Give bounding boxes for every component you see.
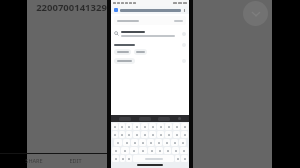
button[interactable]: Emoji xyxy=(126,155,132,162)
button[interactable]: Site info xyxy=(114,8,118,12)
button[interactable] xyxy=(155,139,162,146)
other: Search xyxy=(114,31,119,36)
button[interactable] xyxy=(133,123,140,130)
button[interactable] xyxy=(172,147,179,154)
button[interactable]: SHARE xyxy=(25,157,43,164)
button[interactable] xyxy=(114,49,131,55)
button[interactable] xyxy=(157,123,164,130)
button[interactable] xyxy=(157,131,164,138)
button[interactable]: Insert xyxy=(182,32,186,36)
button[interactable] xyxy=(149,131,156,138)
button[interactable]: More xyxy=(183,9,186,12)
button[interactable] xyxy=(121,147,129,154)
button[interactable] xyxy=(139,147,147,154)
button[interactable]: Symbols xyxy=(112,155,119,162)
button[interactable] xyxy=(130,147,138,154)
button[interactable]: Keyboard settings xyxy=(178,117,181,120)
staticText: SHARE xyxy=(25,157,43,164)
button[interactable]: Slash xyxy=(120,155,125,162)
button[interactable] xyxy=(126,131,132,138)
button[interactable]: Search xyxy=(111,28,189,39)
button[interactable]: Backspace xyxy=(180,147,188,154)
button[interactable] xyxy=(119,131,125,138)
button[interactable] xyxy=(163,139,170,146)
button[interactable] xyxy=(134,49,147,55)
button[interactable] xyxy=(171,139,178,146)
button[interactable] xyxy=(139,139,146,146)
button[interactable] xyxy=(173,123,180,130)
button[interactable] xyxy=(141,123,148,130)
button[interactable]: EDIT xyxy=(69,157,82,164)
button[interactable] xyxy=(165,123,172,130)
button[interactable] xyxy=(181,131,188,138)
button[interactable]: Options xyxy=(182,43,186,47)
button[interactable] xyxy=(133,131,140,138)
button[interactable] xyxy=(112,123,118,130)
button[interactable] xyxy=(164,147,171,154)
button[interactable]: Collapse xyxy=(243,1,268,26)
button[interactable] xyxy=(156,147,163,154)
button[interactable]: Enter xyxy=(181,155,188,162)
button[interactable] xyxy=(147,139,154,146)
button[interactable] xyxy=(181,123,188,130)
button[interactable] xyxy=(131,139,138,146)
button[interactable]: Dot xyxy=(175,155,180,162)
button[interactable] xyxy=(114,139,122,146)
button[interactable] xyxy=(173,131,180,138)
button[interactable] xyxy=(123,139,130,146)
button[interactable] xyxy=(149,123,156,130)
button[interactable] xyxy=(119,123,125,130)
button[interactable]: Space xyxy=(133,155,174,162)
button[interactable]: Add xyxy=(182,59,186,63)
button[interactable] xyxy=(114,16,186,25)
button[interactable] xyxy=(165,131,172,138)
button[interactable] xyxy=(126,123,132,130)
button[interactable] xyxy=(112,131,118,138)
button[interactable] xyxy=(114,58,135,64)
button[interactable] xyxy=(141,131,148,138)
staticText: EDIT xyxy=(69,157,82,164)
button[interactable] xyxy=(148,147,155,154)
staticText: 2200700141329 xyxy=(36,1,107,14)
button[interactable] xyxy=(179,139,186,146)
button[interactable]: Shift xyxy=(112,147,120,154)
